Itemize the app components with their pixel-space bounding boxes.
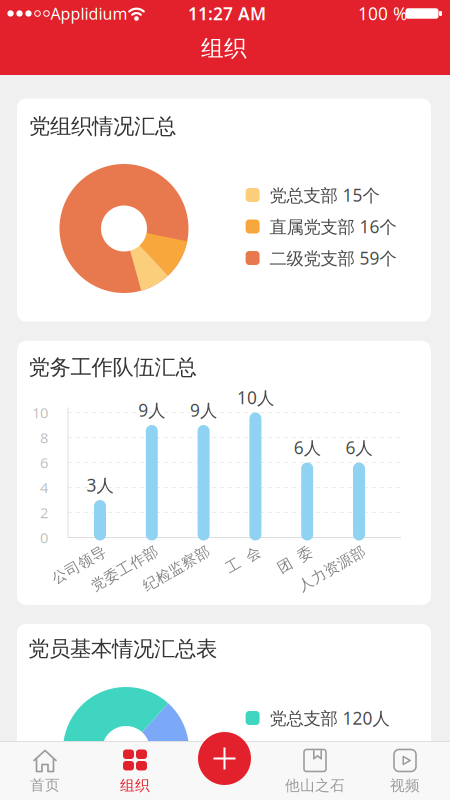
staticText: 党组织情况汇总 (29, 113, 176, 140)
staticText: 9人 (190, 398, 217, 421)
staticText: 团 委 (276, 551, 314, 569)
staticText: 11:27 AM (188, 2, 266, 25)
staticText: 党务工作队伍汇总 (28, 354, 196, 381)
staticText: 工 会 (224, 551, 262, 569)
staticText: 二级党支部 59个 (270, 246, 397, 269)
staticText: 党员基本情况汇总表 (28, 636, 217, 662)
staticText: 6人 (345, 436, 372, 459)
staticText: 2 (40, 503, 48, 522)
staticText: 9人 (138, 398, 165, 421)
staticText: 直属党支部 16个 (270, 215, 397, 238)
staticText: Applidium (50, 3, 127, 24)
staticText: 6人 (294, 436, 321, 459)
staticText: 党委工作部 (87, 559, 162, 577)
staticText: 3人 (86, 473, 113, 496)
staticText: 10 (32, 403, 48, 422)
staticText: 公司领导 (49, 556, 109, 574)
staticText: 他山之石 (285, 776, 345, 794)
staticText: 100 % (358, 2, 407, 25)
button[interactable]: 组织 (95, 745, 175, 799)
button[interactable]: 视频 (365, 745, 445, 799)
staticText: 6 (40, 453, 48, 472)
staticText: 10人 (237, 386, 274, 409)
staticText: 组织 (201, 35, 247, 62)
staticText: 纪检监察部 (139, 559, 214, 577)
button[interactable]: 他山之石 (270, 745, 360, 799)
staticText: 党总支部 120人 (270, 706, 390, 729)
staticText: 党总支部 15个 (270, 183, 380, 206)
staticText: 8 (40, 428, 48, 447)
staticText: 首页 (30, 776, 60, 794)
staticText: 视频 (390, 776, 420, 794)
staticText: 组织 (120, 776, 150, 794)
staticText: 0 (40, 528, 48, 547)
button[interactable]: 首页 (5, 745, 85, 799)
staticText: 人力资源部 (294, 559, 369, 577)
staticText: 4 (40, 478, 48, 497)
button[interactable]: 发布 (194, 728, 254, 788)
